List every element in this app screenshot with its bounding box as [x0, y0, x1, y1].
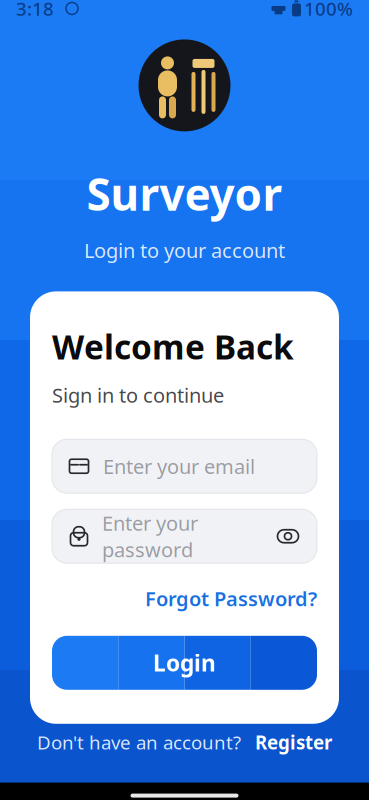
staticText: Login to your account: [84, 237, 285, 263]
button[interactable]: Register: [241, 724, 332, 761]
button[interactable]: Login: [52, 636, 317, 690]
staticText: Sign in to continue: [52, 382, 224, 408]
button[interactable]: Enter your email: [52, 439, 317, 493]
staticText: 100%: [304, 0, 353, 21]
staticText: Surveyor: [86, 164, 282, 223]
staticText: 3:18: [16, 0, 54, 21]
button[interactable]: Enter your password: [52, 509, 317, 563]
staticText: Don't have an account?: [37, 730, 241, 755]
staticText: Enter your email: [103, 453, 255, 480]
staticText: Login: [153, 648, 216, 678]
staticText: Forgot Password?: [145, 585, 317, 612]
staticText: Welcome Back: [52, 324, 294, 369]
staticText: Enter your password: [102, 510, 198, 563]
staticText: Register: [255, 730, 332, 755]
button[interactable]: Forgot Password?: [145, 579, 317, 618]
